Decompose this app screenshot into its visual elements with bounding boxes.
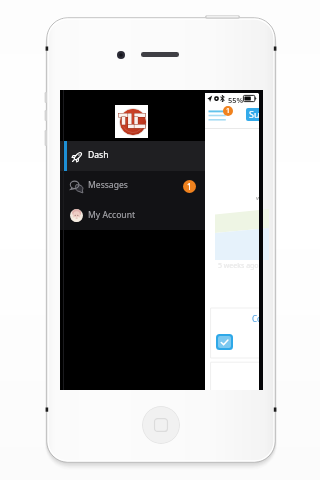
button[interactable]: Mark complete — [216, 334, 233, 350]
button[interactable]: Sub — [246, 108, 263, 121]
staticText: 1 — [187, 181, 192, 192]
staticText: My Account — [88, 209, 136, 221]
button[interactable]: Messages — [60, 171, 205, 201]
staticText: Dash — [88, 149, 109, 161]
staticText: Messages — [88, 179, 128, 191]
button[interactable]: Open navigation menu — [206, 108, 228, 126]
staticText: 5 weeks ago — [218, 261, 259, 271]
button[interactable]: My Account — [60, 201, 205, 230]
staticText: 1 — [226, 106, 231, 116]
staticText: Co — [252, 313, 262, 324]
staticText: w — [256, 194, 261, 202]
button[interactable]: Dash — [60, 141, 205, 171]
staticText: 55% — [228, 95, 244, 105]
staticText: Sub — [249, 108, 263, 121]
